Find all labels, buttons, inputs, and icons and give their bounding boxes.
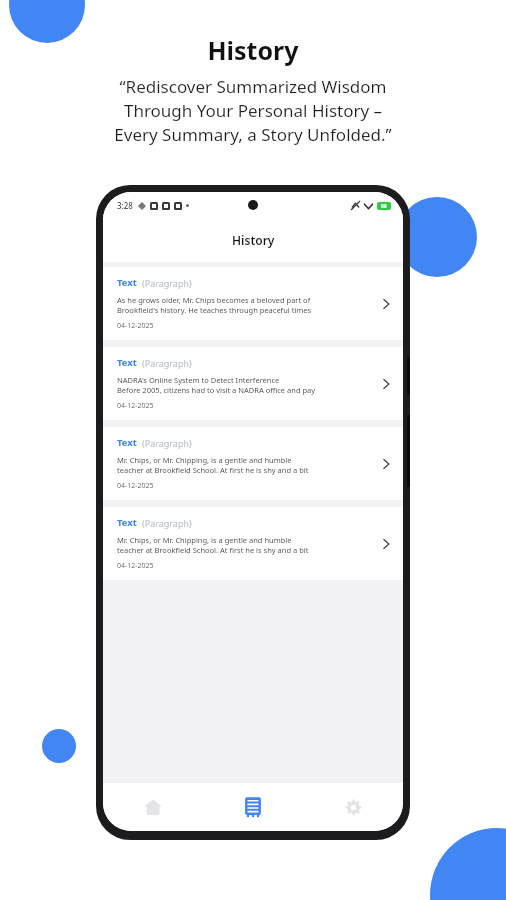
staticText: (Paragraph) [142, 277, 192, 289]
button[interactable]: Text [103, 507, 403, 580]
staticText: 04-12-2025 [117, 481, 154, 491]
staticText: Brookfield's history. He teaches through… [117, 305, 312, 315]
staticText: Text [117, 356, 137, 369]
staticText: (Paragraph) [142, 517, 192, 529]
staticText: NADRA's Online System to Detect Interfer… [117, 375, 280, 385]
other: Open item [379, 457, 393, 471]
button[interactable]: Text [103, 347, 403, 420]
other: Open item [379, 537, 393, 551]
staticText: 04-12-2025 [117, 321, 154, 331]
staticText: (Paragraph) [142, 437, 192, 449]
button[interactable]: Text [103, 267, 403, 340]
staticText: Text [117, 436, 137, 449]
other: Open item [379, 297, 393, 311]
staticText: Text [117, 516, 137, 529]
other: Open item [379, 377, 393, 391]
staticText: Mr. Chips, or Mr. Chipping, is a gentle … [117, 455, 292, 465]
staticText: teacher at Brookfield School. At first h… [117, 545, 309, 555]
button[interactable]: Text [103, 427, 403, 500]
staticText: (Paragraph) [142, 357, 192, 369]
staticText: 80 [381, 203, 387, 210]
staticText: History [207, 33, 299, 67]
staticText: Before 2005, citizens had to visit a NAD… [117, 385, 316, 395]
button[interactable]: Settings [303, 783, 403, 831]
staticText: As he grows older, Mr. Chips becomes a b… [117, 295, 311, 305]
staticText: 04-12-2025 [117, 401, 154, 411]
staticText: “Rediscover Summarized Wisdom Through Yo… [114, 75, 392, 146]
button[interactable]: Home [103, 783, 203, 831]
staticText: History [232, 232, 275, 248]
staticText: Mr. Chips, or Mr. Chipping, is a gentle … [117, 535, 292, 545]
staticText: Text [117, 276, 137, 289]
staticText: 3:28 [117, 200, 133, 211]
staticText: 04-12-2025 [117, 561, 154, 571]
staticText: teacher at Brookfield School. At first h… [117, 465, 309, 475]
button[interactable]: History [203, 783, 303, 831]
